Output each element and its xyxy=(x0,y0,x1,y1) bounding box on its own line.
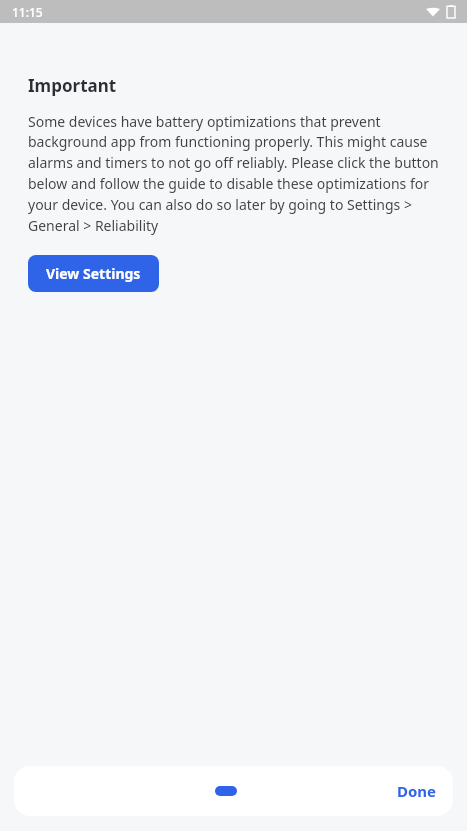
button[interactable]: Done xyxy=(381,771,453,811)
staticText: View Settings xyxy=(46,264,141,283)
button[interactable]: View Settings xyxy=(28,255,159,292)
staticText: Important xyxy=(28,74,117,97)
staticText: Some devices have battery optimizations … xyxy=(28,112,439,236)
other: Page indicator xyxy=(215,786,237,796)
staticText: Done xyxy=(397,781,437,801)
staticText: 11:15 xyxy=(12,4,43,20)
